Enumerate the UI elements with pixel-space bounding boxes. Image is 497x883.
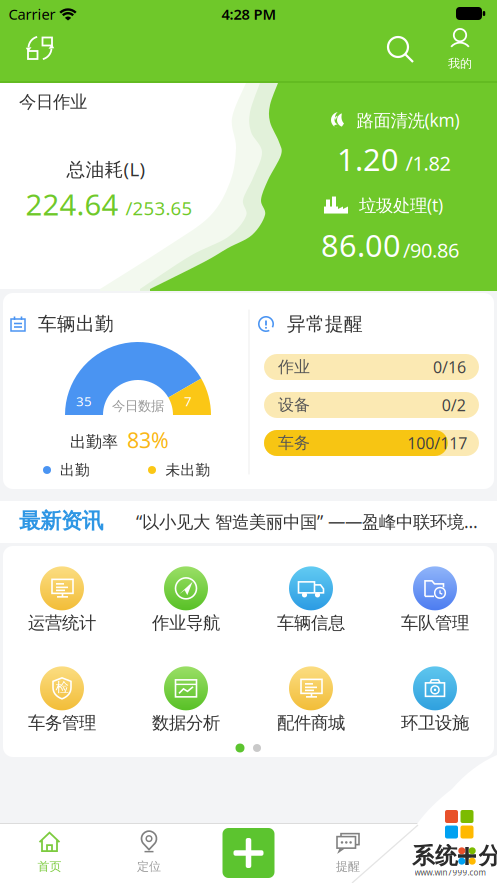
staticText: 未出勤: [165, 461, 210, 479]
staticText: 4:28 PM: [221, 4, 276, 24]
staticText: 总油耗(L): [66, 157, 145, 181]
staticText: /1.82: [405, 150, 450, 176]
staticText: 配件商城: [277, 712, 345, 734]
staticText: 车辆信息: [277, 612, 345, 634]
button[interactable]: 车队管理: [401, 566, 469, 634]
staticText: 提醒: [336, 859, 360, 874]
staticText: 数据分析: [152, 712, 220, 734]
staticText: 最新资讯: [19, 508, 103, 534]
staticText: 车辆出勤: [38, 312, 114, 335]
button[interactable]: 检: [28, 666, 96, 734]
button[interactable]: 扫码: [25, 33, 55, 63]
staticText: Carrier: [8, 4, 55, 24]
staticText: 100/117: [407, 432, 467, 454]
staticText: 分: [478, 842, 497, 870]
staticText: 异常提醒: [287, 312, 363, 335]
staticText: 车队管理: [401, 612, 469, 634]
staticText: /90.86: [403, 237, 459, 263]
button[interactable]: 作业导航: [152, 566, 220, 634]
button[interactable]: 数据分析: [152, 666, 220, 734]
staticText: 车务: [278, 433, 310, 453]
button[interactable]: 车辆信息: [277, 566, 345, 634]
staticText: 检: [55, 679, 68, 696]
button[interactable]: 设备: [264, 392, 479, 418]
button[interactable]: 作业: [264, 354, 479, 380]
staticText: 今日作业: [19, 91, 87, 113]
staticText: 86.00: [321, 225, 401, 265]
staticText: 我的: [448, 56, 472, 71]
staticText: 224.64: [25, 184, 118, 223]
staticText: 作业导航: [152, 612, 220, 634]
staticText: 35: [76, 392, 92, 410]
button[interactable]: 环卫设施: [401, 666, 469, 734]
staticText: 垃圾处理(t): [359, 193, 443, 216]
button[interactable]: 提醒: [334, 830, 362, 874]
staticText: /253.65: [125, 196, 192, 220]
staticText: 作业: [278, 357, 310, 377]
staticText: 出勤率: [70, 432, 118, 452]
button[interactable]: 我的: [445, 27, 475, 71]
button[interactable]: 配件商城: [277, 666, 345, 734]
staticText: 系统: [412, 842, 458, 870]
button[interactable]: 运营统计: [28, 566, 96, 634]
staticText: www.win7999.com: [414, 867, 485, 878]
staticText: 1.20: [337, 139, 399, 179]
staticText: 设备: [278, 395, 310, 415]
staticText: 路面清洗(km): [356, 108, 459, 131]
staticText: “以小见大 智造美丽中国” ——盈峰中联环境…: [136, 510, 478, 533]
staticText: 首页: [37, 859, 61, 874]
staticText: 环卫设施: [401, 712, 469, 734]
staticText: 0/2: [442, 394, 466, 416]
button[interactable]: 首页: [37, 830, 61, 874]
staticText: 出勤: [60, 461, 90, 479]
staticText: 83%: [127, 426, 169, 454]
button[interactable]: 定位: [137, 830, 161, 874]
button[interactable]: 搜索: [385, 34, 415, 64]
button[interactable]: 新增: [222, 828, 274, 878]
staticText: 定位: [137, 859, 161, 874]
button[interactable]: 最新资讯: [0, 500, 497, 542]
staticText: 今日数据: [112, 398, 164, 414]
staticText: 0/16: [433, 356, 466, 378]
staticText: 7: [184, 392, 192, 410]
staticText: 车务管理: [28, 712, 96, 734]
button[interactable]: 车务: [264, 430, 479, 456]
staticText: 运营统计: [28, 612, 96, 634]
